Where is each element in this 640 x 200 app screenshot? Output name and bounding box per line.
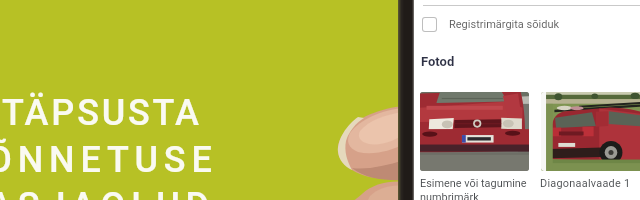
button[interactable]: Esimene või tagumine numbrimärk foto (420, 92, 529, 171)
button[interactable]: Registrimärgita sõiduk (420, 14, 560, 34)
staticText: Registrimärgita sõiduk (449, 18, 560, 31)
staticText: Fotod (421, 54, 455, 69)
staticText: Diagonaalvaade 1 (540, 177, 631, 190)
staticText: TÄPSUSTA (2, 92, 202, 134)
staticText: ÕNNETUSE (0, 139, 218, 181)
staticText: ASJAOLUD (0, 185, 216, 200)
button[interactable]: Diagonaalvaade 1 foto (541, 92, 640, 171)
staticText: Esimene või tagumine (420, 177, 527, 190)
staticText: numbrimärk (420, 191, 479, 200)
